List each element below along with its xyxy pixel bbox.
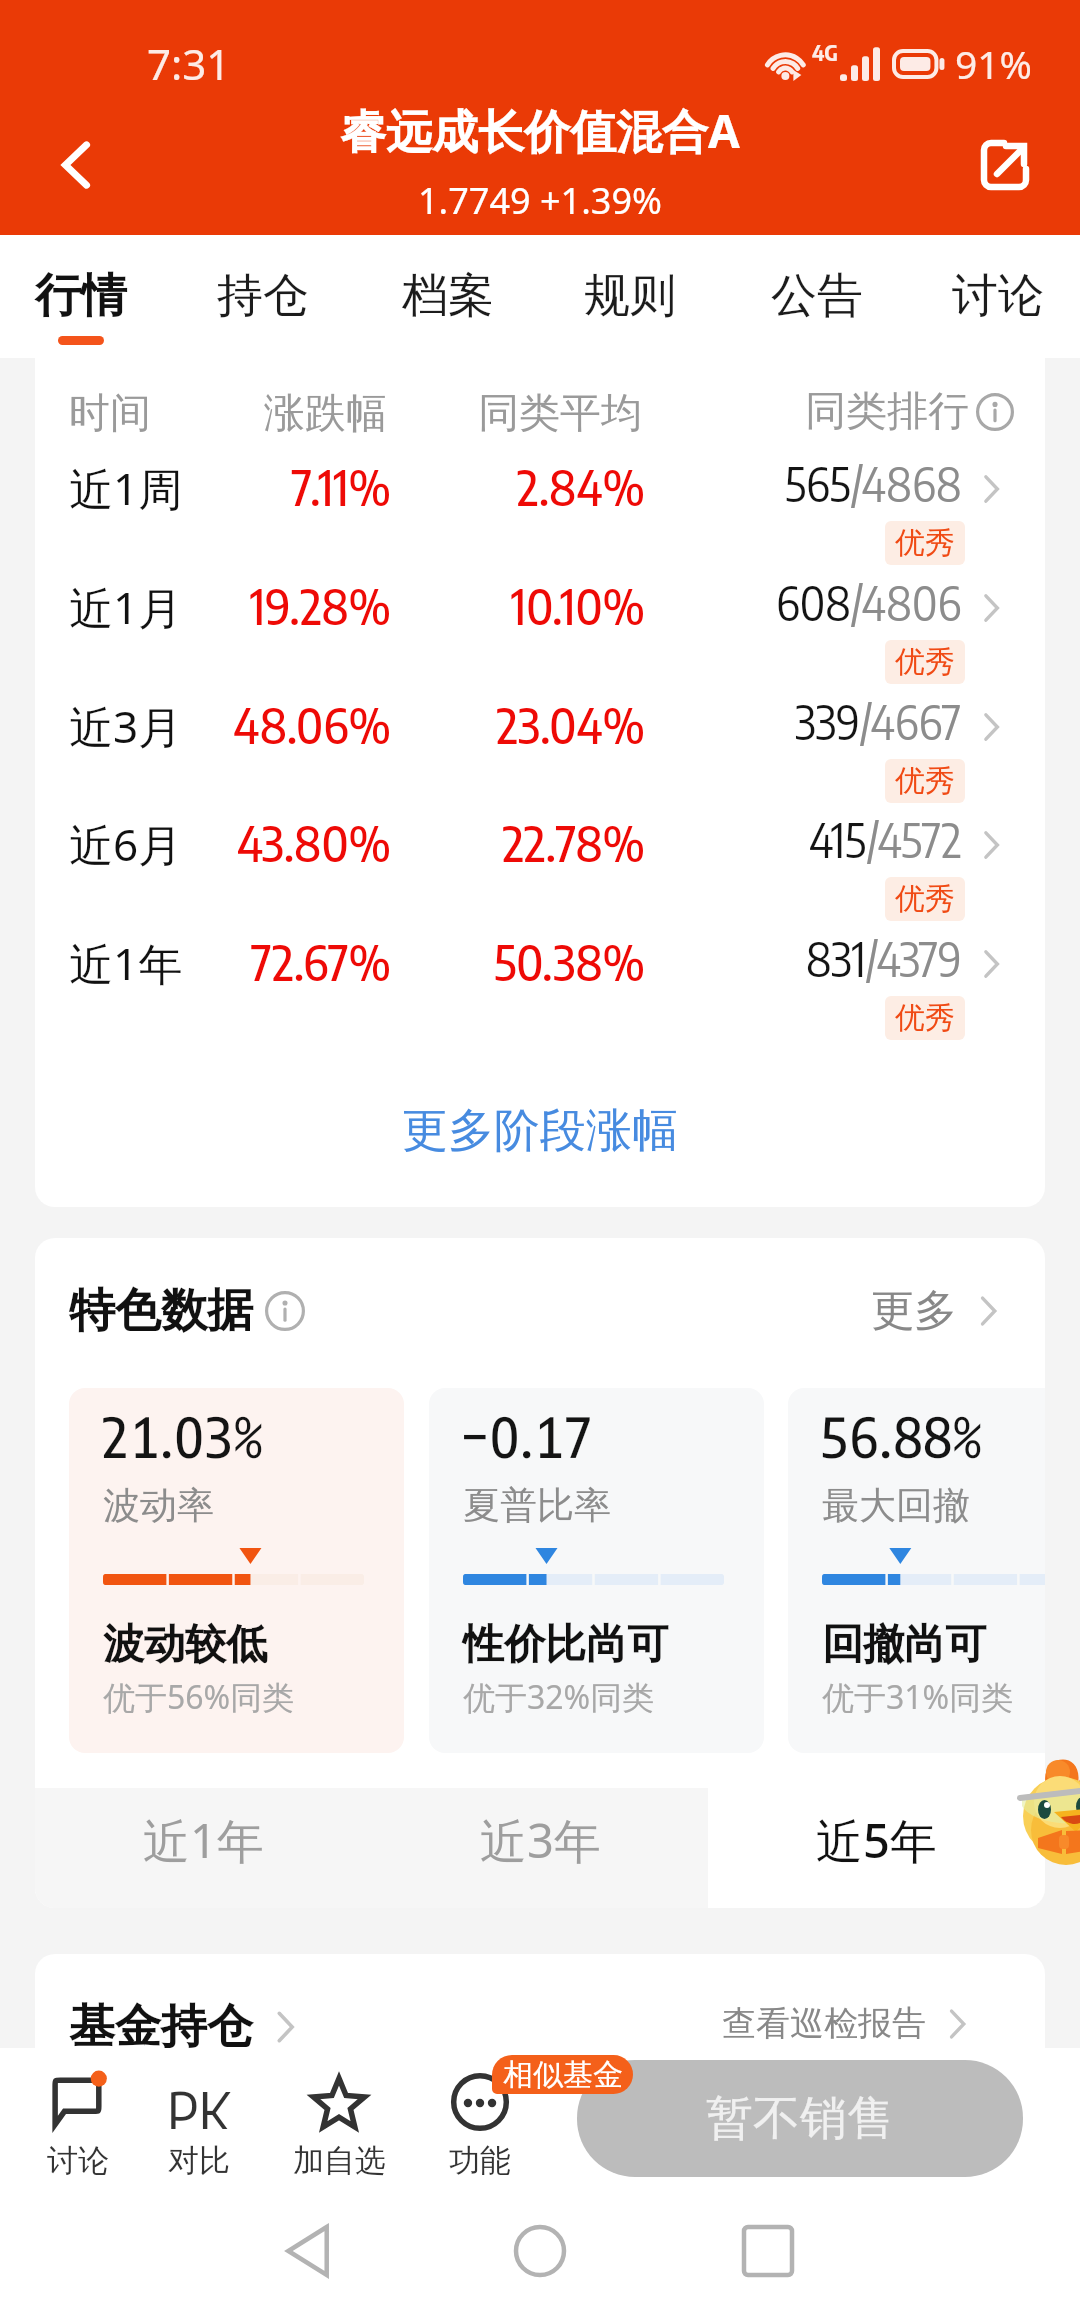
button[interactable]: 更多 <box>871 1284 1005 1338</box>
button[interactable]: 近5年 <box>708 1788 1045 1908</box>
staticText: 565 <box>785 454 851 513</box>
button[interactable]: 近1年 <box>35 1788 372 1908</box>
staticText: /4868 <box>851 454 962 513</box>
staticText: 涨跌幅 <box>35 388 387 440</box>
staticText: 基金持仓 <box>69 1998 253 2056</box>
staticText: 暂不销售 <box>706 2089 894 2148</box>
button[interactable]: 公告 <box>737 235 897 358</box>
button[interactable]: 持仓 <box>183 235 343 358</box>
button[interactable]: 档案 <box>368 235 528 358</box>
staticText: 近1年 <box>69 933 183 993</box>
button[interactable]: 近1月 <box>35 561 1045 673</box>
button[interactable]: 查看巡检报告 <box>722 2002 974 2045</box>
staticText: 优于56%同类 <box>103 1675 295 1719</box>
staticText: /4667 <box>860 692 962 751</box>
button[interactable]: 基金持仓 <box>69 1998 303 2056</box>
staticText: 近5年 <box>816 1808 937 1872</box>
staticText: 波动率 <box>103 1482 214 1529</box>
staticText: 19.28% <box>35 575 391 636</box>
staticText: 近6月 <box>69 814 183 874</box>
staticText: 415 <box>809 810 867 869</box>
staticText: 优于32%同类 <box>463 1675 655 1719</box>
button[interactable]: 暂不销售 <box>577 2060 1023 2177</box>
staticText: 特色数据 <box>69 1282 253 1340</box>
staticText: 持仓 <box>217 267 309 325</box>
staticText: 更多阶段涨幅 <box>402 1102 678 1160</box>
button[interactable]: Back <box>28 117 124 213</box>
button[interactable]: PK <box>129 2048 269 2180</box>
button[interactable]: 加自选 <box>269 2048 409 2180</box>
staticText: 对比 <box>168 2141 230 2180</box>
button[interactable]: 讨论 <box>918 235 1078 358</box>
staticText: 档案 <box>402 267 494 325</box>
button[interactable]: 讨论 <box>8 2048 148 2180</box>
staticText: 讨论 <box>47 2141 109 2180</box>
staticText: 相似基金 <box>503 2056 623 2094</box>
staticText: 近3年 <box>480 1808 601 1872</box>
staticText: 睿远成长价值混合A <box>340 99 740 162</box>
button[interactable]: Share <box>955 115 1055 215</box>
staticText: 时间 <box>69 388 151 440</box>
button[interactable]: 近1年 <box>35 917 1045 1029</box>
button[interactable]: 56.88% <box>788 1388 1045 1753</box>
staticText: 同类排行 <box>805 386 969 438</box>
staticText: 1.7749 +1.39% <box>418 176 662 225</box>
staticText: 近3月 <box>69 696 183 756</box>
button[interactable]: 功能 <box>410 2048 550 2180</box>
staticText: 近1年 <box>143 1808 264 1872</box>
button[interactable]: 规则 <box>550 235 710 358</box>
staticText: 公告 <box>771 267 863 325</box>
staticText: 同类平均 <box>35 388 642 440</box>
staticText: 91% <box>955 37 1033 90</box>
button[interactable]: 行情 <box>1 235 161 358</box>
staticText: 优秀 <box>895 762 955 800</box>
button[interactable]: 近1周 <box>35 442 1045 554</box>
staticText: 优秀 <box>895 643 955 681</box>
staticText: 22.78% <box>35 812 645 873</box>
staticText: 规则 <box>584 267 676 325</box>
button[interactable]: 更多阶段涨幅 <box>35 1102 1045 1202</box>
staticText: 查看巡检报告 <box>722 2002 926 2045</box>
staticText: 讨论 <box>952 267 1044 325</box>
staticText: 夏普比率 <box>463 1482 611 1529</box>
staticText: /4806 <box>851 573 962 632</box>
staticText: 功能 <box>449 2141 511 2180</box>
button[interactable]: 21.03% <box>69 1388 404 1753</box>
staticText: 7.11% <box>35 456 391 517</box>
staticText: 回撤尚可 <box>822 1619 986 1671</box>
staticText: 608 <box>776 573 851 632</box>
staticText: 7:31 <box>147 35 231 92</box>
staticText: 加自选 <box>293 2141 386 2180</box>
button[interactable]: 近6月 <box>35 798 1045 910</box>
staticText: 21.03% <box>100 1401 264 1470</box>
staticText: 波动较低 <box>103 1619 267 1671</box>
button[interactable]: −0.17 <box>429 1388 764 1753</box>
staticText: 48.06% <box>35 694 391 755</box>
staticText: /4572 <box>867 810 962 869</box>
staticText: 性价比尚可 <box>463 1619 668 1671</box>
staticText: −0.17 <box>460 1401 594 1470</box>
button[interactable]: 近3年 <box>372 1788 709 1908</box>
staticText: 优于31%同类 <box>822 1675 1014 1719</box>
staticText: 43.80% <box>35 812 391 873</box>
staticText: 最大回撤 <box>822 1482 970 1529</box>
staticText: 23.04% <box>35 694 645 755</box>
staticText: 近1周 <box>69 458 183 518</box>
staticText: 831 <box>806 929 866 988</box>
staticText: 4G <box>812 38 838 66</box>
staticText: 50.38% <box>35 931 645 992</box>
staticText: 优秀 <box>895 999 955 1037</box>
staticText: 56.88% <box>819 1401 983 1470</box>
staticText: 近1月 <box>69 577 183 637</box>
staticText: /4379 <box>866 929 962 988</box>
staticText: 2.84% <box>35 456 645 517</box>
staticText: 优秀 <box>895 880 955 918</box>
staticText: 更多 <box>871 1284 957 1338</box>
staticText: 10.10% <box>35 575 645 636</box>
button[interactable]: 近3月 <box>35 680 1045 792</box>
staticText: PK <box>167 2075 231 2129</box>
staticText: 72.67% <box>35 931 391 992</box>
staticText: 优秀 <box>895 524 955 562</box>
staticText: 339 <box>795 692 860 751</box>
staticText: 行情 <box>35 267 127 325</box>
